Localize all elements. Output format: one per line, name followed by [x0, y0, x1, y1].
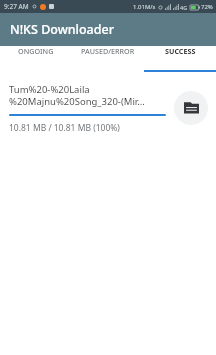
staticText: N!KS Downloader — [10, 21, 114, 38]
button[interactable]: SUCCESS — [144, 46, 216, 56]
button[interactable]: Open folder — [174, 91, 208, 125]
staticText: 10.81 MB / 10.81 MB (100%) — [9, 122, 120, 134]
button[interactable]: Tum%20-%20Laila %20Majnu%20Song_320-(Mir… — [0, 72, 216, 144]
button[interactable]: PAUSED/ERROR — [72, 46, 144, 56]
staticText: PAUSED/ERROR — [81, 46, 135, 56]
button[interactable]: ONGOING — [0, 46, 72, 56]
staticText: 9:27 AM — [4, 2, 29, 11]
staticText: SUCCESS — [165, 46, 196, 56]
staticText: ONGOING — [18, 46, 54, 56]
staticText: 4G — [180, 4, 188, 11]
staticText: Tum%20-%20Laila %20Majnu%20Song_320-(Mir… — [9, 83, 166, 108]
staticText: 72% — [201, 3, 213, 11]
staticText: 1.01M/s — [133, 3, 156, 11]
